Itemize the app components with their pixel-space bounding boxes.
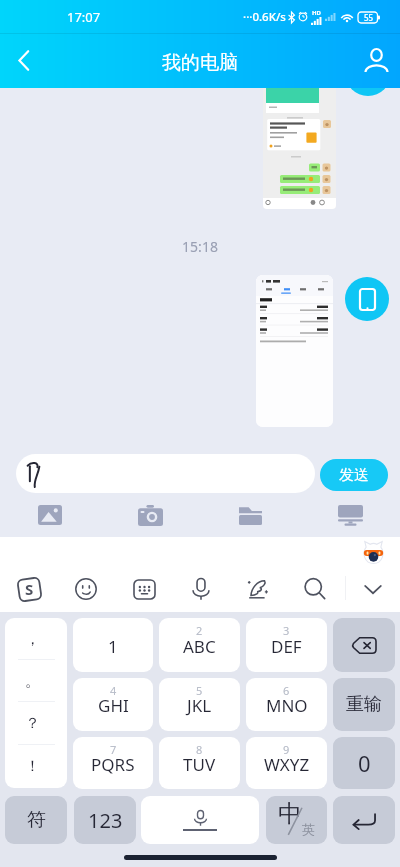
staticText: 重输 (346, 693, 382, 716)
staticText: ！ (25, 757, 40, 776)
button[interactable] (263, 86, 336, 209)
staticText: 17:07 (67, 8, 101, 26)
staticText: 中 (278, 799, 302, 829)
button[interactable]: Computer (300, 493, 400, 537)
staticText: ···0.6K/s (243, 9, 286, 25)
staticText: 15:18 (0, 237, 400, 256)
button[interactable]: 3 (246, 618, 327, 672)
button[interactable]: 发送 (320, 459, 388, 491)
button[interactable]: Hide keyboard (349, 565, 397, 613)
button[interactable]: Space (141, 796, 259, 844)
button[interactable] (16, 454, 315, 493)
staticText: JKL (187, 694, 212, 717)
button[interactable]: 0 (333, 737, 395, 789)
button[interactable]: 1 (73, 618, 153, 672)
button[interactable]: Sogou input (5, 565, 53, 613)
staticText: PQRS (91, 753, 135, 776)
staticText: 我的电脑 (162, 51, 238, 75)
button[interactable]: 5 (159, 678, 240, 731)
button[interactable]: Voice input (177, 565, 225, 613)
button[interactable]: Contact info (354, 38, 398, 82)
staticText: ABC (183, 635, 216, 658)
staticText: 0 (358, 748, 371, 778)
staticText: 英 (302, 821, 315, 837)
staticText: WXYZ (264, 753, 310, 776)
button[interactable]: Gallery (0, 493, 100, 537)
button[interactable]: Emoji (62, 565, 110, 613)
button[interactable]: Search (291, 565, 339, 613)
button[interactable] (256, 275, 333, 427)
button[interactable]: 符 (5, 796, 67, 844)
button[interactable]: 2 (159, 618, 240, 672)
staticText: MNO (266, 694, 308, 717)
button[interactable]: 123 (74, 796, 136, 844)
button[interactable]: 重输 (333, 678, 395, 731)
staticText: GHI (98, 694, 129, 717)
staticText: 3 (283, 623, 290, 638)
staticText: 8 (196, 742, 203, 757)
staticText: ？ (25, 714, 40, 733)
button[interactable]: Delete (333, 618, 395, 672)
staticText: S (25, 579, 34, 599)
staticText: 。 (25, 672, 40, 691)
button[interactable]: 8 (159, 737, 240, 789)
staticText: ， (25, 630, 40, 649)
staticText: 符 (27, 808, 46, 832)
button[interactable]: Keyboard (120, 565, 168, 613)
staticText: DEF (271, 635, 302, 658)
staticText: 1 (108, 635, 118, 658)
button[interactable]: Files (200, 493, 300, 537)
button[interactable]: Handwriting (234, 565, 282, 613)
staticText: 123 (88, 807, 123, 834)
button[interactable]: Back (2, 38, 46, 82)
staticText: 55 (364, 12, 374, 23)
staticText: 5 (196, 683, 203, 698)
button[interactable]: Switch Chinese English (266, 796, 327, 844)
button[interactable]: 7 (73, 737, 153, 789)
staticText: 6 (283, 683, 290, 698)
button[interactable]: Camera (100, 493, 200, 537)
staticText: 7 (110, 742, 117, 757)
staticText: 2 (196, 623, 203, 638)
staticText: HD (312, 9, 321, 17)
staticText: TUV (183, 753, 216, 776)
button[interactable]: 9 (246, 737, 327, 789)
button[interactable]: Enter (333, 796, 395, 844)
button[interactable]: ， (5, 618, 67, 788)
button[interactable]: 6 (246, 678, 327, 731)
staticText: 9 (283, 742, 290, 757)
button[interactable]: Assistant (362, 540, 385, 564)
staticText: 4 (110, 683, 117, 698)
button[interactable]: 4 (73, 678, 153, 731)
button[interactable]: My Computer avatar (345, 277, 389, 321)
staticText: 发送 (339, 466, 369, 485)
